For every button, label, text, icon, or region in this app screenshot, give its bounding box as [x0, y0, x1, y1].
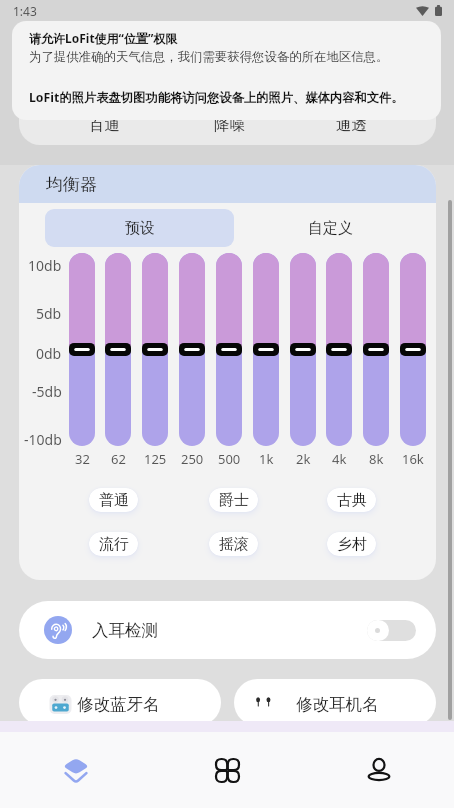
staticText: 预设: [125, 219, 155, 238]
staticText: 125: [144, 450, 167, 465]
button[interactable]: [400, 253, 426, 446]
button[interactable]: In-ear detection toggle: [367, 620, 416, 641]
button[interactable]: Apps: [152, 732, 303, 808]
staticText: -10db: [24, 430, 62, 449]
button[interactable]: 流行: [89, 532, 138, 556]
staticText: 修改耳机名: [296, 694, 379, 715]
button[interactable]: 自定义: [270, 209, 390, 247]
button[interactable]: [105, 253, 131, 446]
staticText: 5db: [36, 304, 62, 323]
staticText: 入耳检测: [92, 620, 158, 641]
button[interactable]: [216, 253, 242, 446]
button[interactable]: 摇滚: [209, 532, 258, 556]
staticText: 修改蓝牙名: [77, 694, 160, 715]
staticText: 32: [75, 450, 90, 465]
button[interactable]: Device: [0, 732, 152, 808]
staticText: 降噪: [214, 115, 245, 135]
staticText: 自定义: [308, 219, 353, 238]
button[interactable]: 预设: [45, 209, 234, 247]
staticText: 乡村: [337, 535, 367, 554]
staticText: 1:43: [13, 3, 37, 19]
button[interactable]: [363, 253, 389, 446]
staticText: 爵士: [219, 491, 249, 510]
staticText: -5db: [32, 382, 62, 401]
staticText: 62: [111, 450, 126, 465]
staticText: LoFit的照片表盘切图功能将访问您设备上的照片、媒体内容和文件。: [29, 89, 404, 106]
staticText: 均衡器: [46, 174, 97, 195]
button[interactable]: [290, 253, 316, 446]
staticText: 摇滚: [219, 535, 249, 554]
staticText: 8k: [369, 450, 384, 465]
staticText: 古典: [337, 491, 367, 510]
button[interactable]: 爵士: [209, 488, 258, 512]
staticText: 请允许LoFit使用“位置”权限: [29, 30, 178, 46]
staticText: 0db: [36, 344, 62, 363]
staticText: 通透: [336, 115, 367, 135]
button[interactable]: 修改蓝牙名: [19, 679, 221, 726]
button[interactable]: 修改耳机名: [234, 679, 436, 726]
button[interactable]: 古典: [327, 488, 376, 512]
button[interactable]: [179, 253, 205, 446]
button[interactable]: [326, 253, 352, 446]
staticText: 4k: [332, 450, 347, 465]
button[interactable]: [142, 253, 168, 446]
staticText: 250: [181, 450, 204, 465]
staticText: 流行: [99, 535, 129, 554]
button[interactable]: [69, 253, 95, 446]
staticText: 1k: [259, 450, 274, 465]
staticText: 500: [218, 450, 241, 465]
staticText: 为了提供准确的天气信息，我们需要获得您设备的所在地区信息。: [29, 49, 389, 65]
button[interactable]: 乡村: [327, 532, 376, 556]
staticText: 10db: [28, 256, 62, 275]
staticText: 普通: [99, 491, 129, 510]
staticText: 百通: [89, 115, 120, 135]
button[interactable]: 普通: [89, 488, 138, 512]
button[interactable]: [253, 253, 279, 446]
button[interactable]: 入耳检测: [19, 601, 436, 659]
button[interactable]: Profile: [303, 732, 454, 808]
staticText: 16k: [402, 450, 424, 465]
staticText: 2k: [296, 450, 311, 465]
